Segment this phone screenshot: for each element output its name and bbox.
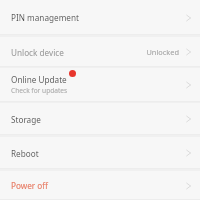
staticText: Power off (11, 180, 48, 191)
button[interactable]: Storage (0, 103, 200, 135)
staticText: Check for updates (11, 86, 68, 95)
staticText: PIN management (11, 12, 79, 23)
button[interactable]: Online Update (0, 68, 200, 102)
button[interactable]: Reboot (0, 137, 200, 169)
staticText: Unlock device (11, 47, 64, 58)
button[interactable]: PIN management (0, 0, 200, 35)
button[interactable]: Unlock device (0, 37, 200, 67)
staticText: Online Update (11, 74, 67, 85)
staticText: Reboot (11, 148, 39, 159)
staticText: Storage (11, 114, 41, 125)
staticText: Unlocked (146, 47, 179, 57)
button[interactable]: Power off (0, 171, 200, 200)
